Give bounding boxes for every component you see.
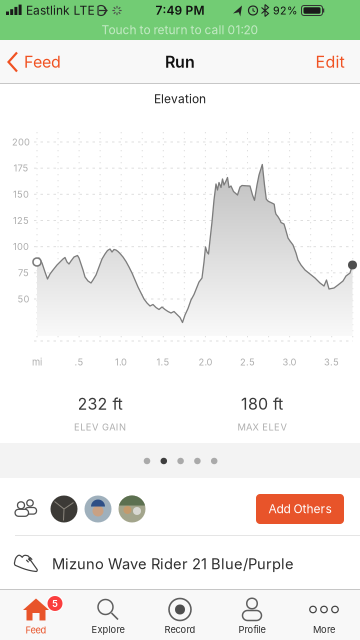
staticText: 150 bbox=[13, 189, 29, 200]
button[interactable]: Add Others bbox=[256, 494, 344, 524]
staticText: 175 bbox=[13, 163, 28, 174]
button[interactable]: Touch to return to call 01:20 bbox=[0, 20, 360, 40]
staticText: Run bbox=[165, 53, 195, 71]
button[interactable]: Record bbox=[144, 591, 216, 640]
staticText: 125 bbox=[13, 215, 29, 226]
staticText: Record bbox=[164, 624, 195, 635]
staticText: Eastlink bbox=[26, 3, 70, 18]
staticText: 50 bbox=[17, 293, 29, 304]
staticText: ELEV GAIN bbox=[74, 421, 126, 432]
button[interactable]: Mizuno Wave Rider 21 Blue/Purple bbox=[0, 536, 360, 589]
button[interactable]: Athlete bbox=[50, 495, 77, 522]
staticText: More bbox=[313, 624, 335, 635]
staticText: Feed bbox=[25, 624, 46, 635]
staticText: 5 bbox=[52, 598, 58, 609]
staticText: Add Others bbox=[268, 502, 331, 516]
staticText: 3.5 bbox=[324, 356, 339, 367]
staticText: 2.0 bbox=[198, 356, 212, 367]
staticText: 100 bbox=[13, 241, 29, 252]
staticText: 232 ft bbox=[77, 395, 122, 413]
staticText: .5 bbox=[74, 356, 83, 367]
staticText: 2.5 bbox=[240, 356, 255, 367]
button[interactable]: Profile bbox=[216, 591, 288, 640]
staticText: Profile bbox=[238, 624, 265, 635]
staticText: Explore bbox=[91, 624, 124, 635]
button[interactable]: Athlete bbox=[84, 495, 111, 522]
staticText: LTE bbox=[73, 3, 94, 18]
staticText: Touch to return to call 01:20 bbox=[101, 23, 258, 37]
button[interactable]: Feed bbox=[7, 51, 61, 72]
staticText: Elevation bbox=[154, 92, 206, 106]
button[interactable]: Explore bbox=[72, 591, 144, 640]
staticText: Edit bbox=[315, 53, 344, 71]
staticText: 92% bbox=[273, 4, 297, 17]
staticText: MAX ELEV bbox=[238, 421, 286, 432]
staticText: 200 bbox=[12, 136, 30, 147]
staticText: Feed bbox=[24, 53, 61, 71]
staticText: 3.0 bbox=[282, 356, 296, 367]
staticText: mi bbox=[32, 356, 42, 367]
staticText: 7:49 PM bbox=[155, 3, 204, 18]
staticText: 1.5 bbox=[156, 356, 169, 367]
staticText: 75 bbox=[18, 267, 29, 278]
button[interactable]: More bbox=[288, 591, 360, 640]
staticText: 1.0 bbox=[115, 356, 127, 367]
button[interactable]: Edit bbox=[315, 53, 344, 71]
staticText: 180 ft bbox=[241, 395, 283, 413]
staticText: Mizuno Wave Rider 21 Blue/Purple bbox=[52, 555, 294, 573]
button[interactable]: Athlete bbox=[118, 495, 145, 522]
button[interactable]: 5 bbox=[0, 591, 72, 640]
